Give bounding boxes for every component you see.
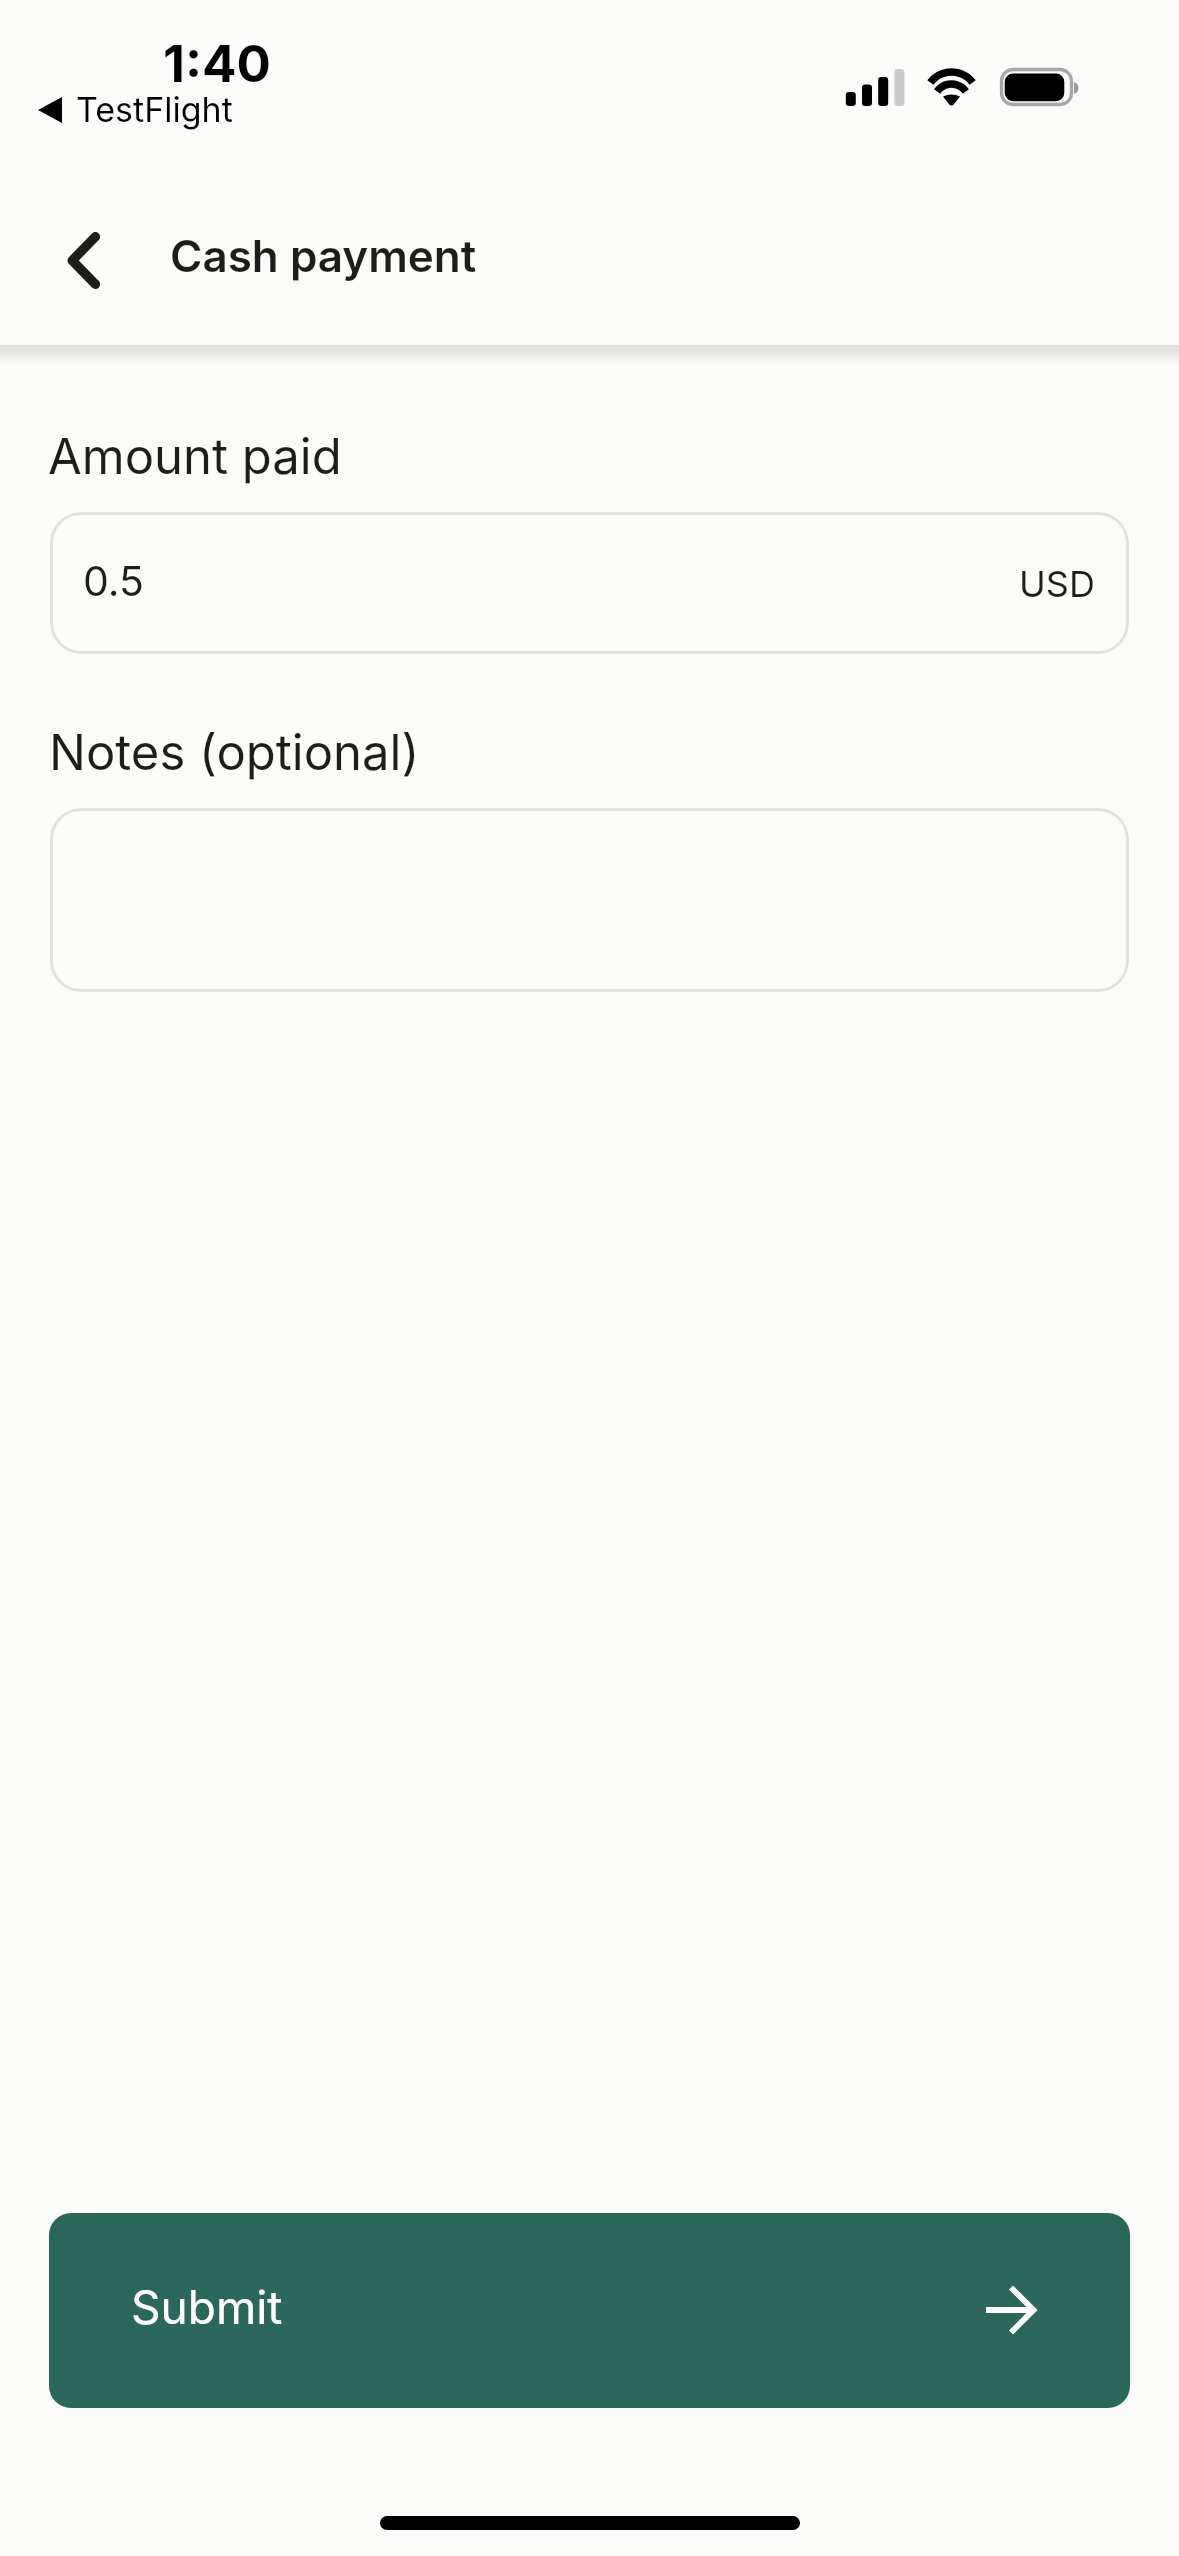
staticText: Amount paid bbox=[48, 427, 342, 486]
staticText: 0.5 bbox=[83, 556, 144, 606]
button[interactable]: Amount paid input field bbox=[50, 512, 1129, 654]
staticText: Cash payment bbox=[170, 229, 477, 282]
other: Cellular signal, Wi-Fi and battery bbox=[840, 60, 1090, 110]
staticText: 1:40 bbox=[163, 33, 271, 95]
staticText: Submit bbox=[131, 2279, 283, 2335]
button[interactable]: Notes input field bbox=[50, 808, 1129, 992]
staticText: USD bbox=[1019, 562, 1095, 606]
button[interactable]: Submit bbox=[49, 2213, 1130, 2408]
staticText: Notes (optional) bbox=[49, 723, 420, 782]
button[interactable]: Back bbox=[39, 216, 129, 306]
staticText: TestFlight bbox=[76, 89, 233, 130]
